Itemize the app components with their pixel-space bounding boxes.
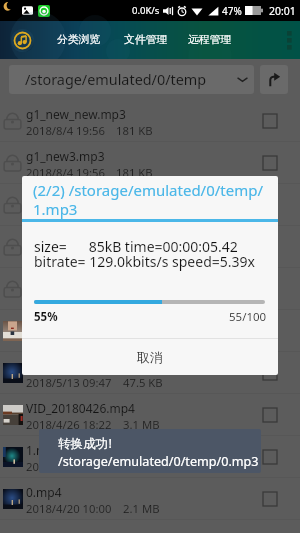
button[interactable]: Select 1.jpg <box>263 366 277 380</box>
button[interactable]: 0.mp4 <box>0 478 300 520</box>
button[interactable]: Select VID_20180426.mp4 <box>263 408 277 422</box>
button[interactable]: 1.mp4 <box>0 436 300 478</box>
button[interactable]: Select g1_new3.mp3 <box>263 156 277 170</box>
staticText: 55% <box>34 309 58 325</box>
staticText: 2018/5/26 15:56 <box>26 333 112 348</box>
staticText: 47% <box>222 4 242 18</box>
staticText: 2018/8/4 19:40 <box>26 207 105 222</box>
staticText: 1.mp4 <box>26 442 62 458</box>
staticText: 2018/5/13 09:47 <box>26 375 112 390</box>
staticText: 181 KB <box>116 249 153 264</box>
staticText: 6.1 MB <box>123 333 160 348</box>
staticText: 取消 <box>137 349 163 365</box>
button[interactable]: 远程管理 <box>188 33 232 47</box>
staticText: 55/100 <box>229 309 267 325</box>
staticText: g1_new.mp3 <box>26 232 98 248</box>
staticText: 1.1 MB <box>123 459 160 474</box>
staticText: 0.mp4 <box>26 484 62 500</box>
button[interactable]: 文件管理 <box>124 33 168 47</box>
button[interactable]: 2.mp4 <box>0 310 300 352</box>
button[interactable]: g1_new2.mp3 <box>0 184 300 226</box>
staticText: 181 KB <box>116 165 153 180</box>
button[interactable]: /storage/emulated/0/temp <box>9 65 254 94</box>
staticText: 2018/4/20 10:00 <box>26 501 112 516</box>
staticText: 2018/8/4 19:31 <box>26 249 105 264</box>
staticText: bitrate= 129.0kbits/s speed=5.39x <box>34 252 255 271</box>
staticText: 远程管理 <box>188 33 232 47</box>
staticText: VID_20180426.mp4 <box>26 400 135 416</box>
staticText: 文件管理 <box>124 33 168 47</box>
staticText: 47.5 KB <box>123 375 163 390</box>
button[interactable]: Select 1.mp4 <box>263 450 277 464</box>
staticText: 181 KB <box>116 207 153 222</box>
staticText: 分类浏览 <box>57 33 101 47</box>
button[interactable]: Select g1_new_new.mp3 <box>263 114 277 128</box>
staticText: 2.1 MB <box>123 501 160 516</box>
staticText: 2018/8/4 19:56 <box>26 123 105 138</box>
staticText: 181 KB <box>116 123 153 138</box>
button[interactable]: g1_new_new.mp3 <box>0 100 300 142</box>
button[interactable]: 1.jpg <box>0 352 300 394</box>
staticText: 2018/8/4 19:20 <box>26 291 105 306</box>
staticText: (2/2) /storage/emulated/0/temp/ 1.mp3 <box>33 180 278 219</box>
staticText: g1_new_new.mp3 <box>26 106 126 122</box>
button[interactable]: 分类浏览 <box>57 33 101 47</box>
button[interactable]: VID_20180426.mp4 <box>0 394 300 436</box>
staticText: g1_new3.mp3 <box>26 148 105 164</box>
button[interactable]: Select 0.mp4 <box>263 492 277 506</box>
button[interactable]: g1_new.mp3 <box>0 226 300 268</box>
staticText: 转换成功! /storage/emulated/0/temp/0.mp3 <box>58 435 259 470</box>
staticText: 0.0K/s <box>132 4 160 17</box>
staticText: 2.mp4 <box>26 316 62 332</box>
staticText: 2018/8/4 19:56 <box>26 165 105 180</box>
staticText: 20:01 <box>269 4 296 18</box>
staticText: 2018/4/26 18:22 <box>26 417 112 432</box>
staticText: size= 85kB time=00:00:05.42 <box>34 237 238 256</box>
button[interactable]: 取消 <box>22 339 278 375</box>
staticText: g1_new2.mp3 <box>26 190 105 206</box>
button[interactable]: g1_new3.mp3 <box>0 142 300 184</box>
staticText: 181 KB <box>116 291 153 306</box>
button[interactable]: g1.mp3 <box>0 268 300 310</box>
staticText: /storage/emulated/0/temp <box>25 70 207 90</box>
staticText: 2018/4/29 15:04 <box>26 459 112 474</box>
button[interactable]: More options <box>270 21 300 59</box>
button[interactable]: Up one level <box>260 65 288 94</box>
staticText: 3.1 MB <box>123 417 160 432</box>
